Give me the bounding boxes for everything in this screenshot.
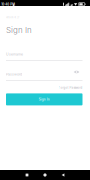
button[interactable]: Back bbox=[54, 170, 72, 180]
staticText: version 4.1.27 bbox=[6, 16, 19, 19]
staticText: Username bbox=[6, 52, 23, 56]
staticText: Sign In bbox=[39, 97, 50, 101]
button[interactable]: Recents bbox=[18, 170, 36, 180]
button[interactable]: Forgot Password bbox=[56, 85, 82, 91]
button[interactable]: Sign In bbox=[6, 93, 82, 105]
staticText: Sign In bbox=[6, 25, 32, 35]
staticText: Password bbox=[6, 72, 22, 76]
staticText: 10:40 PM bbox=[1, 3, 15, 6]
staticText: Forgot Password bbox=[58, 86, 82, 89]
button[interactable]: Show password bbox=[70, 67, 82, 76]
button[interactable]: Home bbox=[36, 170, 54, 180]
